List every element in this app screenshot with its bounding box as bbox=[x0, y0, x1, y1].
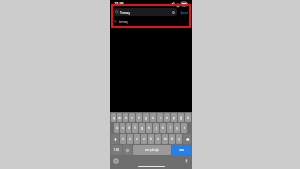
button[interactable]: e bbox=[123, 113, 128, 122]
staticText: e bbox=[125, 116, 127, 120]
staticText: İptal bbox=[180, 10, 188, 15]
button[interactable]: k bbox=[160, 123, 166, 133]
button[interactable]: m bbox=[162, 134, 168, 144]
staticText: c bbox=[136, 137, 138, 141]
staticText: ü bbox=[187, 116, 189, 120]
button[interactable]: ç bbox=[176, 134, 182, 144]
staticText: t bbox=[138, 116, 140, 120]
staticText: x bbox=[129, 137, 131, 141]
button[interactable]: Change keyboard bbox=[123, 145, 132, 155]
staticText: y bbox=[145, 116, 147, 120]
button[interactable]: ş bbox=[174, 123, 180, 133]
button[interactable]: l bbox=[167, 123, 173, 133]
button[interactable]: z bbox=[120, 134, 126, 144]
button[interactable]: d bbox=[126, 123, 131, 133]
staticText: 21:26 bbox=[114, 1, 124, 6]
button[interactable]: ü bbox=[185, 113, 191, 122]
staticText: m bbox=[164, 137, 167, 141]
staticText: p bbox=[173, 116, 175, 120]
button[interactable]: j bbox=[153, 123, 159, 133]
button[interactable]: ö bbox=[169, 134, 175, 144]
button[interactable]: w bbox=[117, 113, 122, 122]
button[interactable]: n bbox=[155, 134, 161, 144]
button[interactable]: 123 bbox=[111, 145, 122, 155]
staticText: z bbox=[122, 137, 124, 141]
staticText: ç bbox=[178, 137, 180, 141]
staticText: ğ bbox=[180, 116, 182, 120]
button[interactable]: İptal bbox=[179, 9, 189, 16]
button[interactable]: c bbox=[134, 134, 140, 144]
staticText: w bbox=[118, 116, 121, 120]
button[interactable]: tırnaş bbox=[110, 17, 192, 26]
staticText: f bbox=[134, 126, 136, 130]
staticText: ş bbox=[176, 126, 178, 130]
button[interactable]: a bbox=[114, 123, 119, 133]
button[interactable]: i bbox=[181, 123, 187, 133]
button[interactable]: ı bbox=[157, 113, 163, 122]
staticText: ı bbox=[160, 116, 161, 120]
staticText: d bbox=[128, 126, 130, 130]
button[interactable]: o bbox=[164, 113, 170, 122]
staticText: ö bbox=[171, 137, 173, 141]
staticText: k bbox=[162, 126, 164, 130]
button[interactable]: p bbox=[171, 113, 177, 122]
button[interactable]: Dictation bbox=[183, 158, 189, 164]
button[interactable]: y bbox=[143, 113, 149, 122]
button[interactable]: s bbox=[120, 123, 125, 133]
button[interactable]: Shift bbox=[111, 134, 119, 144]
staticText: l bbox=[170, 126, 171, 130]
button[interactable]: b bbox=[148, 134, 154, 144]
staticText: u bbox=[152, 116, 154, 120]
button[interactable]: Clear search bbox=[171, 10, 175, 14]
button[interactable]: Emoji bbox=[113, 158, 119, 164]
staticText: v bbox=[143, 137, 145, 141]
staticText: n bbox=[157, 137, 159, 141]
staticText: r bbox=[131, 116, 133, 120]
button[interactable]: Backspace bbox=[183, 134, 191, 144]
button[interactable]: q bbox=[111, 113, 116, 122]
staticText: j bbox=[156, 126, 157, 130]
staticText: i bbox=[184, 126, 185, 130]
button[interactable]: f bbox=[132, 123, 138, 133]
staticText: ara bbox=[179, 148, 184, 152]
button[interactable]: ğ bbox=[178, 113, 184, 122]
button[interactable]: g bbox=[139, 123, 145, 133]
staticText: tırnaş bbox=[119, 20, 128, 24]
staticText: 123 bbox=[114, 148, 119, 152]
button[interactable]: u bbox=[150, 113, 156, 122]
button[interactable]: v bbox=[141, 134, 147, 144]
button[interactable]: Tırnaş bbox=[113, 8, 177, 16]
staticText: s bbox=[122, 126, 124, 130]
button[interactable]: t bbox=[136, 113, 142, 122]
button[interactable]: x bbox=[127, 134, 133, 144]
staticText: b bbox=[150, 137, 152, 141]
staticText: q bbox=[113, 116, 115, 120]
staticText: g bbox=[141, 126, 143, 130]
staticText: o bbox=[166, 116, 168, 120]
staticText: Tırnaş bbox=[120, 10, 130, 15]
button[interactable]: ara bbox=[172, 145, 191, 155]
staticText: h bbox=[148, 126, 150, 130]
button[interactable]: h bbox=[146, 123, 152, 133]
staticText: a bbox=[116, 126, 118, 130]
button[interactable]: r bbox=[129, 113, 135, 122]
button[interactable]: ara çubuğu bbox=[133, 145, 171, 155]
staticText: ara çubuğu bbox=[145, 148, 159, 152]
